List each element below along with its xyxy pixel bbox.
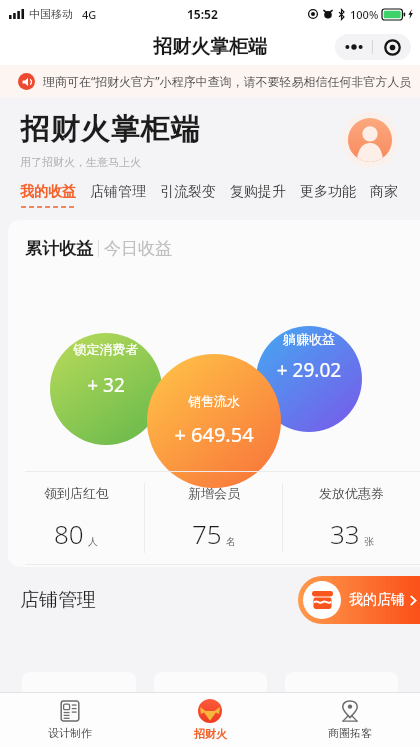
staticText: 商家: [370, 183, 398, 201]
button[interactable]: Profile avatar: [342, 112, 398, 168]
staticText: 销售流水: [158, 393, 270, 409]
staticText: 引流裂变: [160, 183, 216, 201]
staticText: 复购提升: [230, 183, 286, 201]
staticText: 更多功能: [300, 183, 356, 201]
button[interactable]: 累计收益: [25, 238, 93, 259]
staticText: 75: [192, 516, 222, 551]
button[interactable]: 新增会员: [145, 472, 282, 564]
staticText: 招财火掌柜端: [153, 35, 267, 59]
button[interactable]: 今日收益: [104, 238, 172, 259]
button[interactable]: Close: [373, 34, 411, 60]
staticText: 用了招财火，生意马上火: [20, 155, 141, 169]
staticText: 新增会员: [188, 485, 240, 501]
button[interactable]: 招财火: [140, 693, 280, 747]
staticText: 100%: [350, 7, 379, 22]
staticText: 人: [88, 535, 98, 548]
staticText: + 32: [52, 372, 160, 398]
staticText: 店铺管理: [90, 183, 146, 201]
staticText: 15:52: [187, 6, 218, 22]
button[interactable]: 店铺管理: [20, 588, 96, 612]
staticText: 4G: [82, 7, 97, 22]
staticText: 发放优惠券: [319, 485, 384, 501]
button[interactable]: 我的收益: [20, 183, 90, 208]
staticText: 我的收益: [20, 183, 76, 201]
button[interactable]: 领到店红包: [8, 472, 144, 564]
staticText: 锁定消费者: [52, 341, 160, 357]
staticText: + 29.02: [259, 357, 359, 383]
button[interactable]: 复购提升: [230, 183, 300, 206]
staticText: 设计制作: [48, 726, 92, 740]
button[interactable]: 设计制作: [0, 693, 140, 747]
staticText: 张: [364, 535, 374, 548]
staticText: 理商可在“招财火官方”小程序中查询，请不要轻易相信任何非官方人员: [43, 73, 412, 89]
button[interactable]: 发放优惠券: [283, 472, 420, 564]
staticText: 躺赚收益: [259, 331, 359, 347]
button[interactable]: 引流裂变: [160, 183, 230, 206]
staticText: 33: [330, 516, 360, 551]
button[interactable]: 店铺管理: [90, 183, 160, 206]
button[interactable]: 理商可在“招财火官方”小程序中查询，请不要轻易相信任何非官方人员: [18, 65, 420, 97]
staticText: 招财火: [194, 727, 227, 741]
button[interactable]: More options: [335, 34, 372, 60]
staticText: 名: [226, 535, 236, 548]
staticText: 我的店铺: [349, 591, 405, 609]
button[interactable]: 更多功能: [300, 183, 370, 206]
button[interactable]: 商圈拓客: [280, 693, 420, 747]
staticText: 招财火掌柜端: [20, 111, 200, 148]
button[interactable]: 商家: [370, 183, 398, 206]
staticText: + 649.54: [158, 421, 270, 448]
staticText: 商圈拓客: [328, 726, 372, 740]
button[interactable]: 我的店铺: [298, 576, 420, 624]
staticText: 中国移动: [29, 7, 73, 21]
staticText: 领到店红包: [44, 485, 109, 501]
staticText: 80: [54, 516, 84, 551]
